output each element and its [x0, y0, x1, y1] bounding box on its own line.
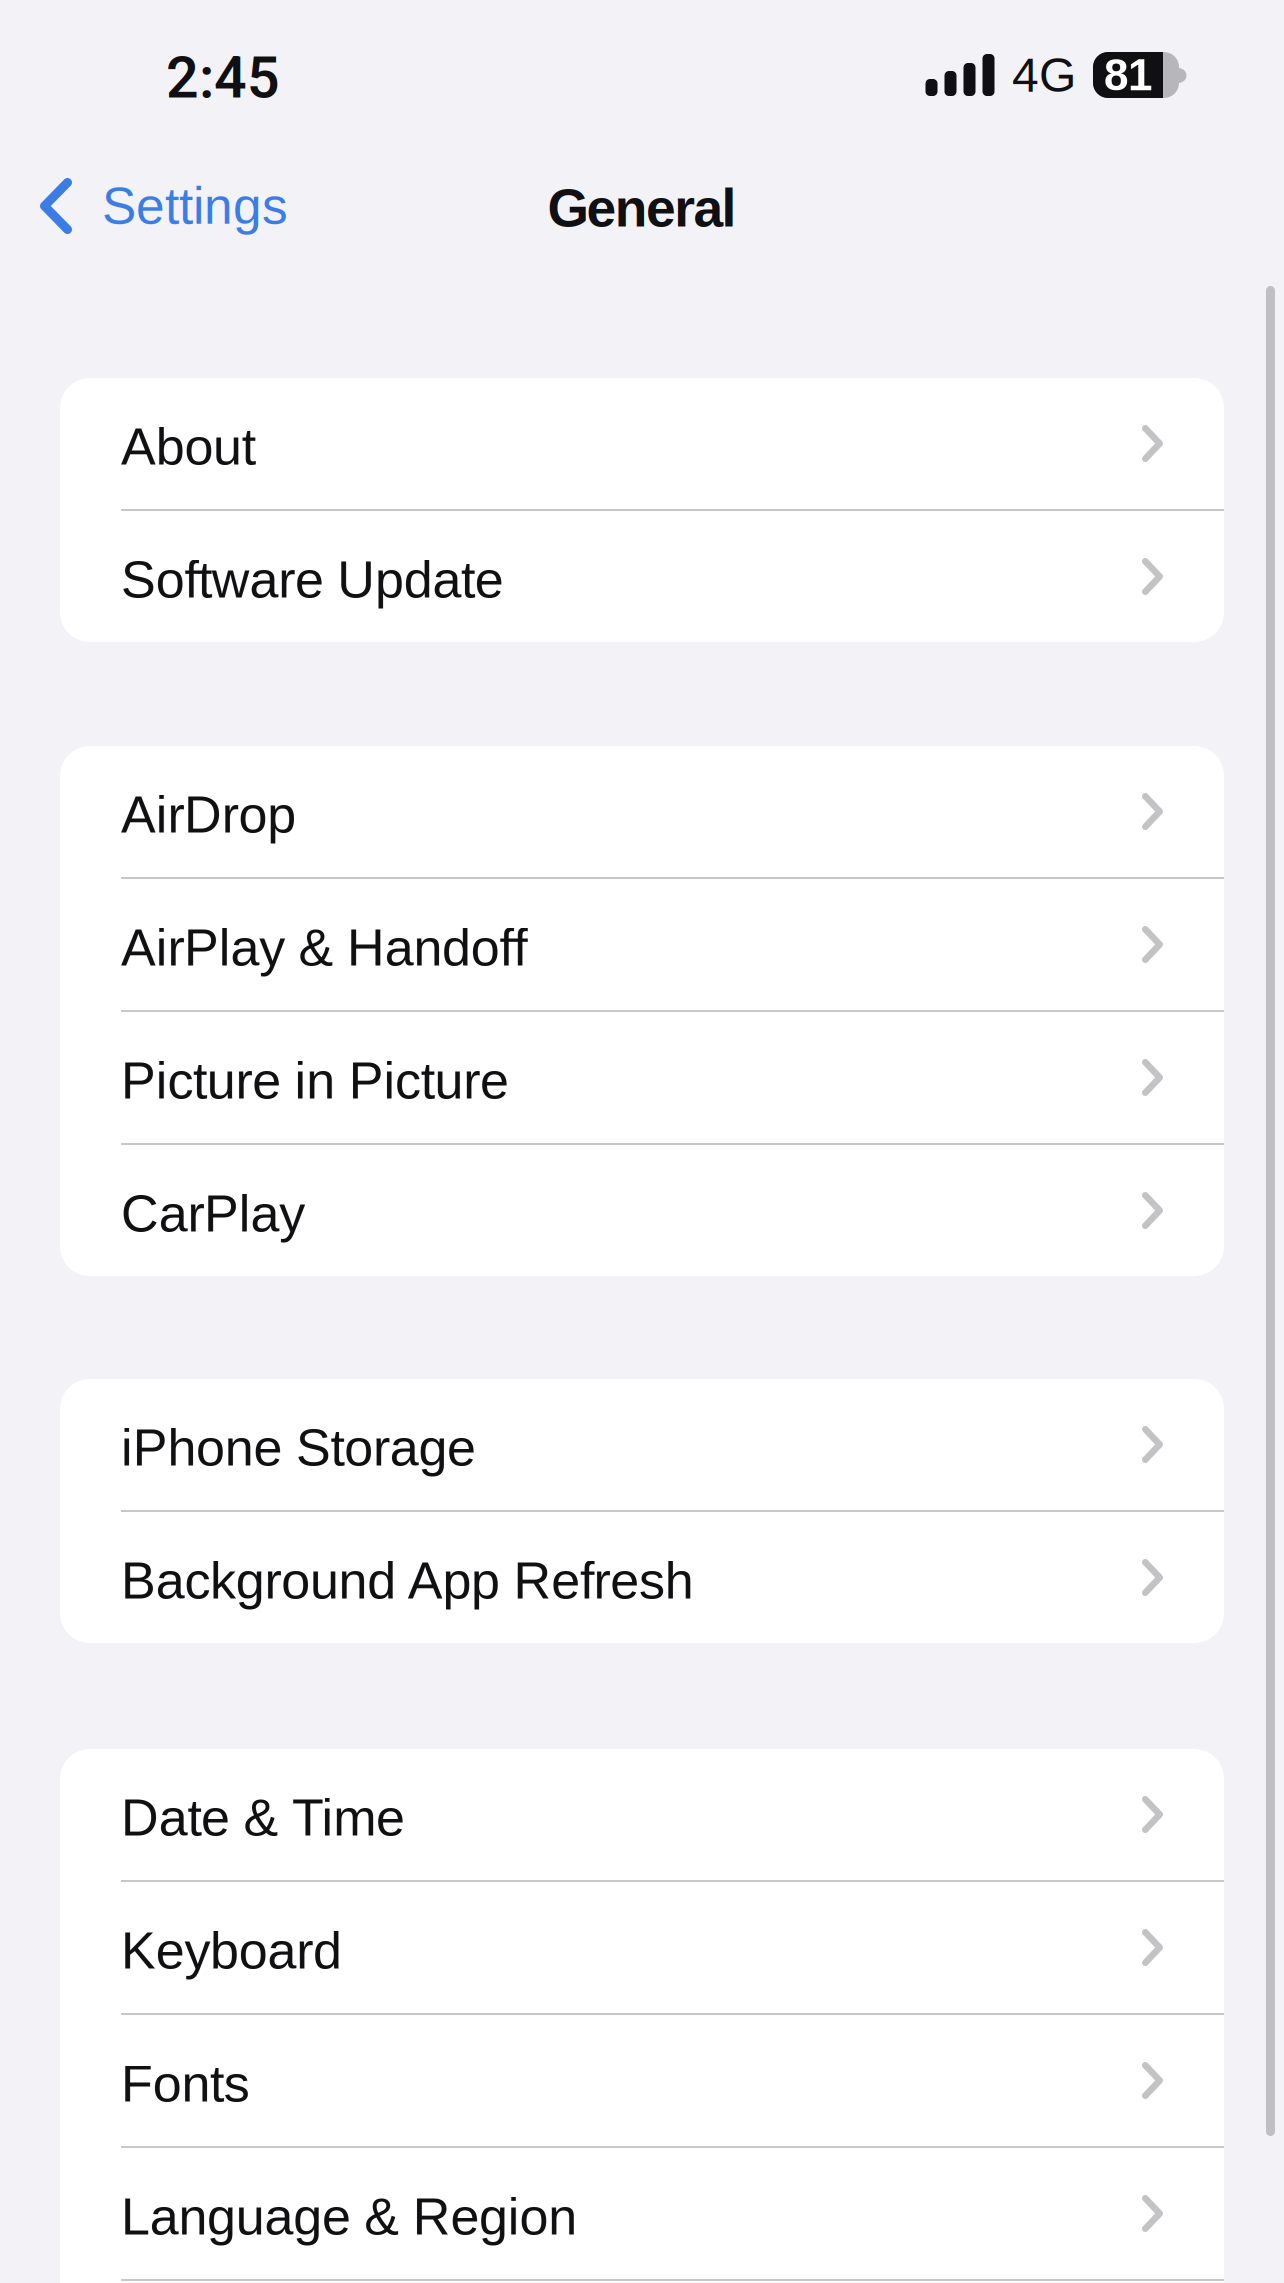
button[interactable]: Date & Time — [60, 1749, 1224, 1880]
button[interactable]: Background App Refresh — [60, 1512, 1224, 1643]
button[interactable]: Settings — [0, 151, 312, 261]
staticText: General — [547, 178, 737, 238]
staticText: 2:45 — [166, 44, 280, 112]
staticText: Language & Region — [121, 2187, 577, 2246]
staticText: Keyboard — [121, 1921, 342, 1980]
staticText: iPhone Storage — [121, 1418, 476, 1477]
staticText: 81 — [1104, 50, 1152, 100]
staticText: Picture in Picture — [121, 1051, 509, 1110]
button[interactable]: About — [60, 378, 1224, 509]
button[interactable]: iPhone Storage — [60, 1379, 1224, 1510]
button[interactable]: CarPlay — [60, 1145, 1224, 1276]
staticText: Settings — [102, 177, 288, 235]
staticText: 4G — [1012, 48, 1076, 102]
staticText: Software Update — [121, 550, 504, 609]
button[interactable]: Software Update — [60, 511, 1224, 642]
staticText: Date & Time — [121, 1788, 405, 1847]
button[interactable]: Keyboard — [60, 1882, 1224, 2013]
staticText: Background App Refresh — [121, 1551, 694, 1610]
staticText: CarPlay — [121, 1184, 305, 1243]
button[interactable]: AirPlay & Handoff — [60, 879, 1224, 1010]
button[interactable]: Fonts — [60, 2015, 1224, 2146]
button[interactable]: AirDrop — [60, 746, 1224, 877]
button[interactable]: Language & Region — [60, 2148, 1224, 2279]
button[interactable]: Picture in Picture — [60, 1012, 1224, 1143]
staticText: Fonts — [121, 2054, 250, 2113]
staticText: AirPlay & Handoff — [121, 918, 527, 977]
staticText: AirDrop — [121, 785, 296, 844]
staticText: About — [121, 417, 256, 476]
